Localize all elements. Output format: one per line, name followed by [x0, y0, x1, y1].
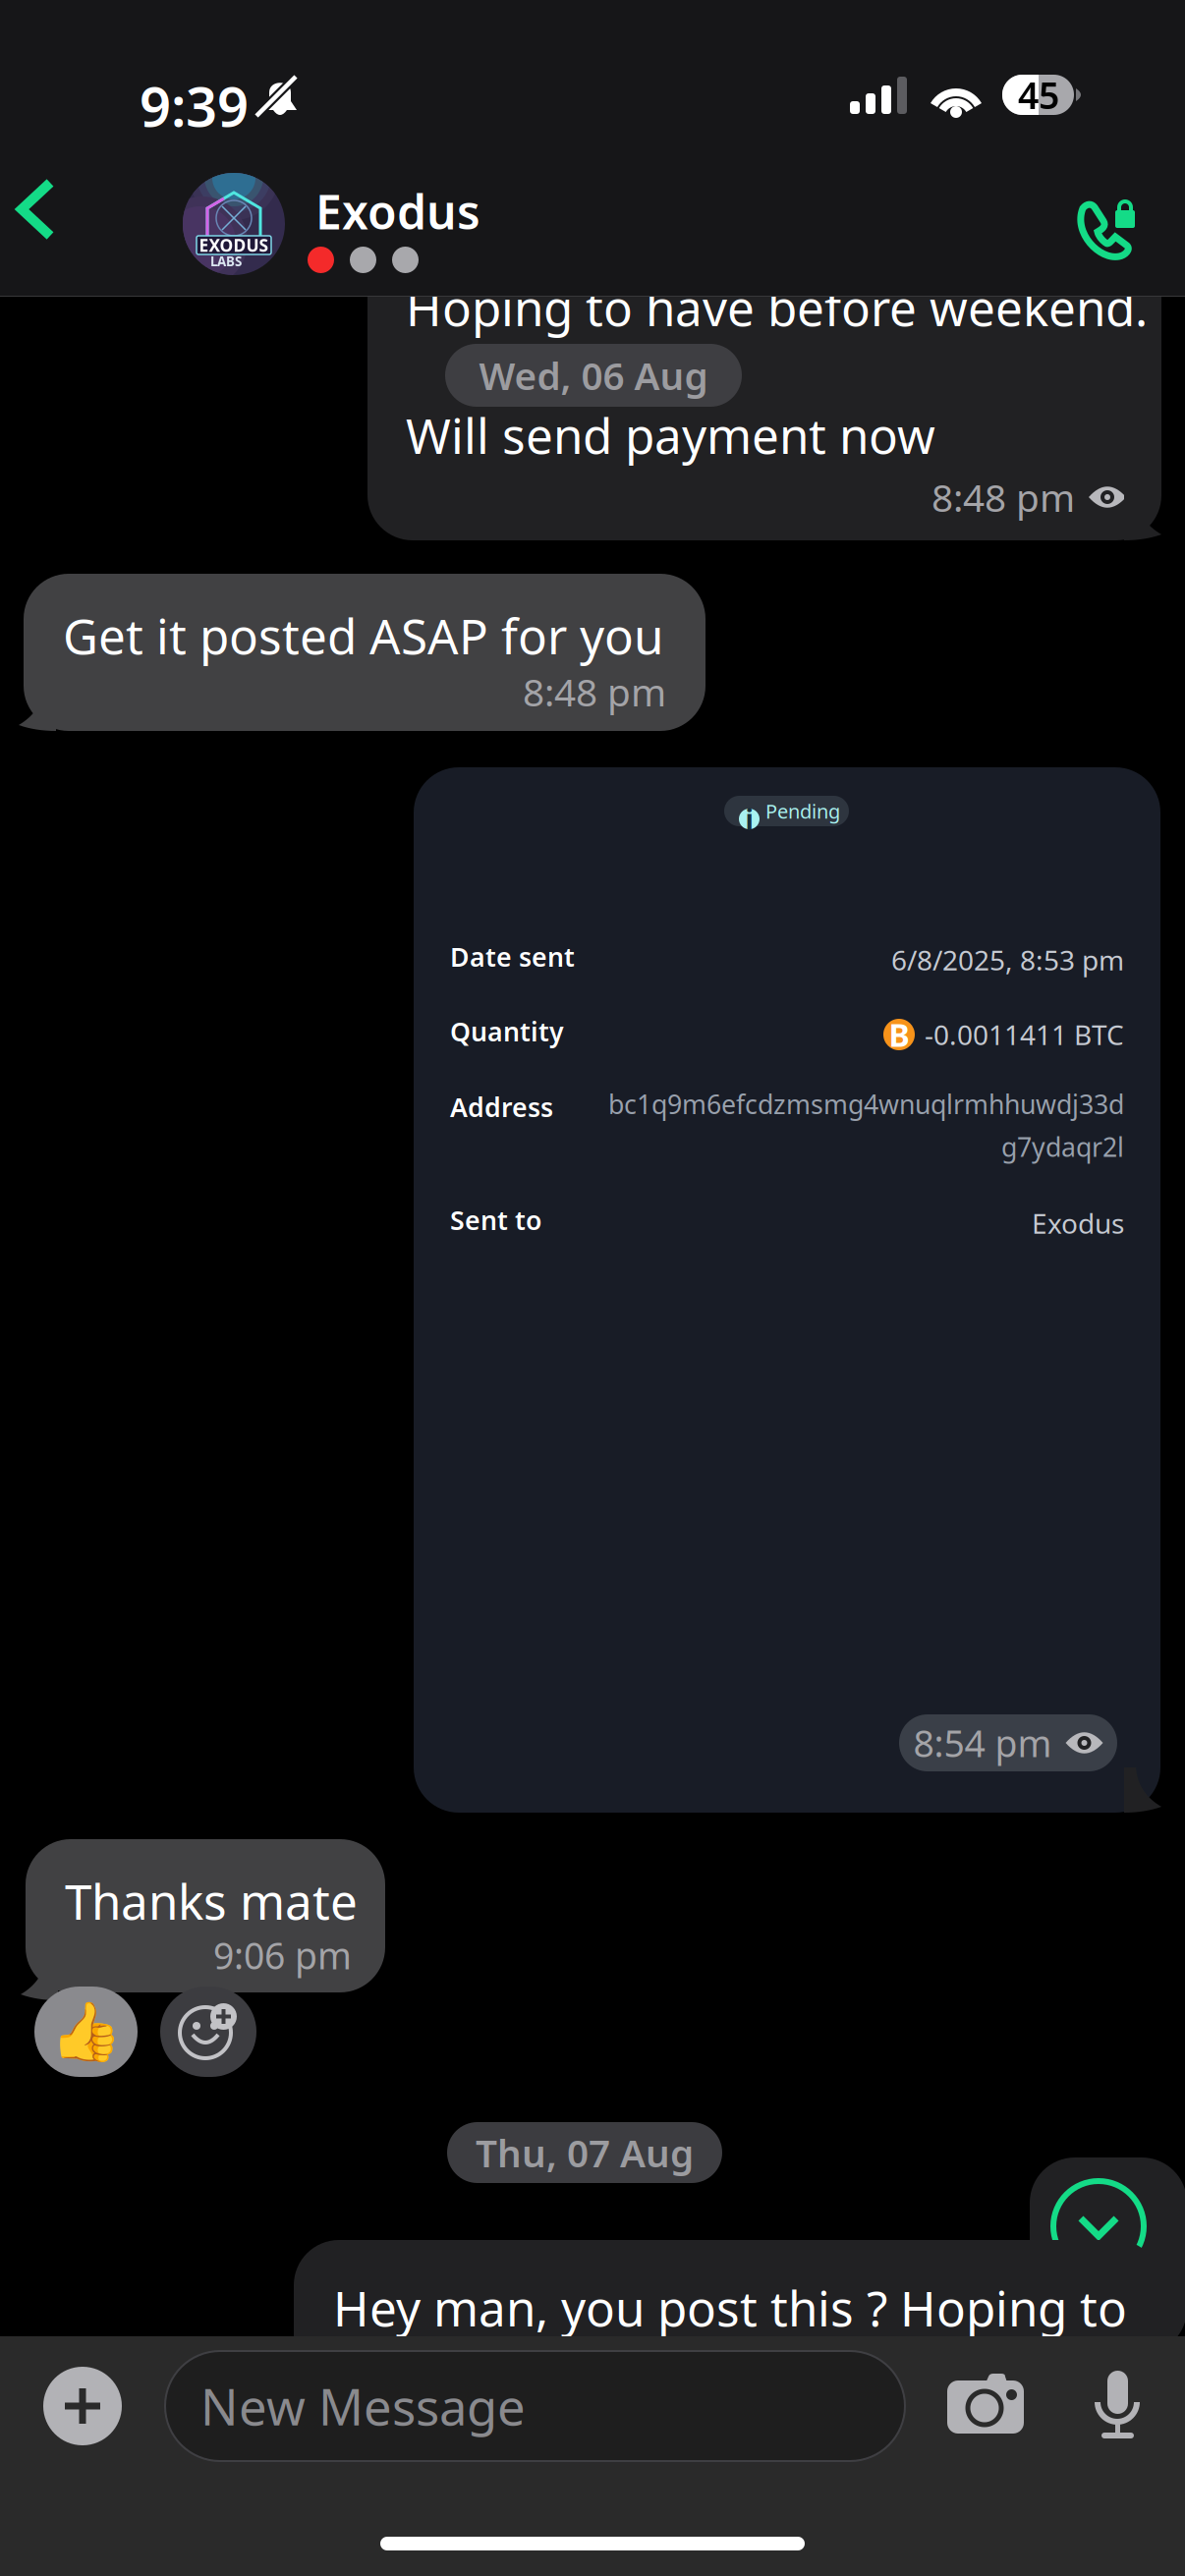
- staticText: Pending: [765, 798, 840, 824]
- staticText: 9:06 pm: [213, 1931, 352, 1979]
- staticText: Exodus: [315, 180, 480, 242]
- staticText: i: [745, 801, 753, 837]
- staticText: Get it posted ASAP for you: [63, 603, 663, 668]
- button[interactable]: New Message: [165, 2351, 905, 2461]
- staticText: 👍: [50, 1999, 122, 2065]
- staticText: LABS: [210, 252, 242, 270]
- button[interactable]: Camera: [947, 2374, 1024, 2434]
- staticText: Hoping to have before weekend.: [406, 275, 1148, 339]
- staticText: 9:39: [140, 69, 249, 142]
- staticText: Exodus: [1032, 1205, 1124, 1241]
- staticText: bc1q9m6efcdzmsmg4wnuqlrmhhuwdj33d: [608, 1087, 1124, 1121]
- button[interactable]: Scroll to bottom: [1053, 2181, 1144, 2271]
- staticText: -0.0011411 BTC: [925, 1016, 1124, 1053]
- staticText: Quantity: [450, 1014, 564, 1049]
- staticText: 8:48 pm: [523, 666, 666, 717]
- staticText: 8:54 pm: [913, 1719, 1052, 1767]
- staticText: 8:48 pm: [931, 472, 1075, 522]
- staticText: Date sent: [450, 939, 575, 974]
- staticText: g7ydaqr2l: [1001, 1129, 1124, 1164]
- staticText: 45: [1018, 70, 1059, 119]
- staticText: Hey man, you post this ? Hoping to: [333, 2275, 1127, 2340]
- staticText: Wed, 06 Aug: [479, 350, 708, 400]
- button[interactable]: Back: [16, 179, 55, 240]
- staticText: Address: [450, 1090, 553, 1124]
- staticText: Thu, 07 Aug: [476, 2127, 694, 2178]
- staticText: Sent to: [450, 1203, 541, 1237]
- button[interactable]: Thumbs up reaction: [34, 1987, 138, 2077]
- button[interactable]: Record voice message: [1095, 2371, 1140, 2438]
- staticText: New Message: [200, 2373, 526, 2439]
- button[interactable]: Call: [1070, 199, 1153, 264]
- button[interactable]: Add attachment: [43, 2367, 122, 2445]
- staticText: Thanks mate: [65, 1869, 358, 1933]
- staticText: EXODUS: [199, 234, 269, 256]
- button[interactable]: Add reaction: [160, 1987, 256, 2077]
- staticText: B: [889, 1014, 909, 1055]
- staticText: Will send payment now: [406, 403, 935, 467]
- staticText: 6/8/2025, 8:53 pm: [891, 942, 1124, 978]
